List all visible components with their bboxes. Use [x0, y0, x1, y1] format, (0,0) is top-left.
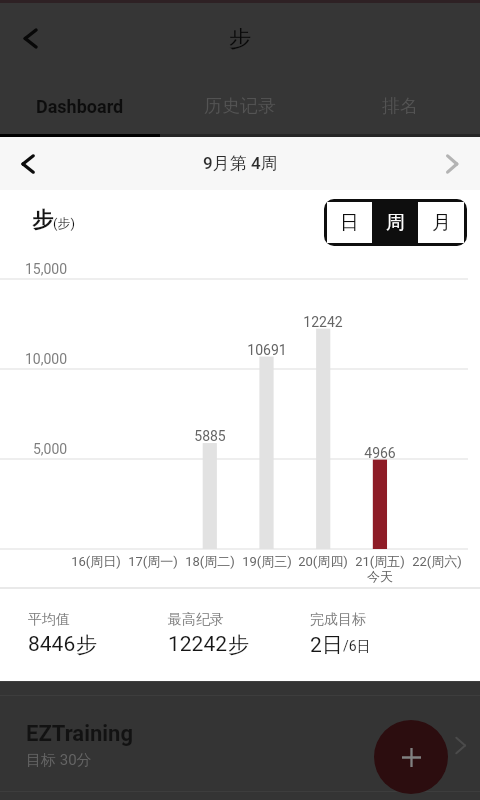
button[interactable]: 日: [327, 202, 372, 243]
staticText: 步: [228, 632, 249, 658]
staticText: 日: [340, 211, 359, 235]
staticText: 4966: [350, 445, 410, 461]
staticText: 12242: [293, 314, 353, 330]
button[interactable]: Previous week: [0, 137, 56, 190]
staticText: 17(周一): [118, 553, 188, 569]
button[interactable]: Dashboard: [0, 74, 160, 138]
staticText: 月: [432, 211, 451, 235]
staticText: 步: [76, 632, 97, 658]
staticText: 5885: [180, 428, 240, 444]
button[interactable]: 周: [372, 202, 418, 243]
staticText: 19(周三): [232, 553, 302, 569]
staticText: 今天: [345, 568, 415, 584]
staticText: 完成目标: [310, 611, 366, 629]
staticText: 周: [386, 211, 405, 235]
button[interactable]: 月: [418, 202, 464, 243]
staticText: 步: [229, 25, 251, 53]
staticText: 9月第 4周: [203, 153, 278, 174]
button[interactable]: 历史记录: [160, 74, 320, 138]
button[interactable]: Add: [374, 720, 448, 794]
staticText: 21(周五): [345, 553, 415, 569]
staticText: (步): [53, 215, 75, 231]
staticText: 12242: [168, 632, 228, 657]
button[interactable]: Next week: [424, 137, 480, 190]
staticText: 5,000: [33, 441, 68, 457]
staticText: 10,000: [25, 351, 68, 367]
button[interactable]: EZTraining: [26, 697, 471, 793]
staticText: 目标 30分: [26, 751, 92, 770]
staticText: 10691: [237, 342, 297, 358]
staticText: 18(周二): [175, 553, 245, 569]
staticText: 最高纪录: [168, 611, 224, 629]
staticText: 平均值: [28, 611, 70, 629]
staticText: 排名: [382, 95, 418, 118]
button[interactable]: 排名: [320, 74, 480, 138]
staticText: 步: [32, 207, 53, 233]
staticText: Dashboard: [36, 96, 124, 117]
staticText: 16(周日): [61, 553, 131, 569]
staticText: 22(周六): [402, 553, 472, 569]
staticText: 15,000: [25, 261, 68, 277]
staticText: 8446: [28, 632, 76, 657]
staticText: EZTraining: [26, 721, 134, 747]
staticText: 20(周四): [288, 553, 358, 569]
staticText: 2日: [310, 632, 343, 658]
staticText: /6日: [343, 638, 371, 656]
staticText: 历史记录: [204, 95, 276, 118]
button[interactable]: Back: [0, 3, 60, 74]
